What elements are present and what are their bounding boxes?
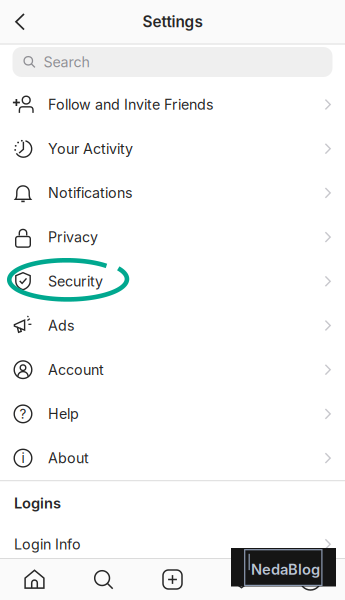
staticText: Search [43,53,89,71]
staticText: NedaBlog [251,560,320,578]
button[interactable]: Login Info [0,525,345,563]
button[interactable]: Security [0,259,345,303]
button[interactable]: Profile [276,559,345,600]
button[interactable]: Create [138,559,207,600]
staticText: Login Info [14,536,81,553]
button[interactable]: Your Activity [0,127,345,171]
staticText: Follow and Invite Friends [48,96,214,113]
staticText: ? [19,406,26,422]
button[interactable]: Home [0,559,69,600]
button[interactable]: Follow and Invite Friends [0,82,345,127]
button[interactable]: Account [0,348,345,392]
button[interactable]: ? [0,392,345,436]
staticText: Privacy [48,228,98,246]
staticText: Your Activity [48,140,133,157]
button[interactable]: Notifications [0,171,345,215]
button[interactable]: Ads [0,303,345,348]
button[interactable]: Search [69,559,138,600]
button[interactable]: Back [0,1,40,43]
staticText: About [48,449,89,467]
button[interactable]: i [0,436,345,480]
staticText: Notifications [48,184,133,202]
staticText: Help [48,405,79,423]
button[interactable]: Activity [207,559,276,600]
staticText: Settings [142,12,202,31]
staticText: Ads [48,317,75,334]
button[interactable]: Privacy [0,215,345,259]
staticText: Account [48,361,104,378]
staticText: Security [48,273,103,290]
staticText: i [21,450,24,466]
staticText: Logins [14,494,61,512]
